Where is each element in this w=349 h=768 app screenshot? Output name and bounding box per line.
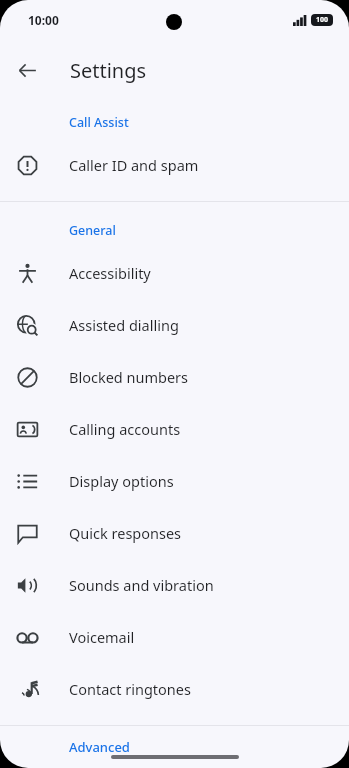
button[interactable]: Sounds and vibration: [0, 559, 349, 611]
staticText: Settings: [70, 57, 147, 84]
staticText: Advanced: [69, 738, 130, 756]
button[interactable]: Advanced: [0, 726, 349, 768]
button[interactable]: Contact ringtones: [0, 663, 349, 715]
staticText: Calling accounts: [69, 419, 181, 439]
staticText: Display options: [69, 471, 174, 491]
button[interactable]: Calling accounts: [0, 403, 349, 455]
staticText: 10:00: [28, 12, 59, 28]
button[interactable]: Accessibility: [0, 247, 349, 299]
staticText: Blocked numbers: [69, 367, 189, 387]
staticText: Quick responses: [69, 523, 182, 543]
button[interactable]: Quick responses: [0, 507, 349, 559]
button[interactable]: Back: [11, 54, 43, 86]
staticText: Assisted dialling: [69, 315, 179, 335]
button[interactable]: Assisted dialling: [0, 299, 349, 351]
staticText: Caller ID and spam: [69, 155, 199, 175]
button[interactable]: Display options: [0, 455, 349, 507]
staticText: Call Assist: [69, 114, 129, 131]
staticText: 100: [316, 15, 329, 25]
staticText: Accessibility: [69, 263, 151, 283]
staticText: Sounds and vibration: [69, 575, 214, 595]
staticText: General: [69, 222, 116, 239]
button[interactable]: Caller ID and spam: [0, 139, 349, 191]
button[interactable]: Blocked numbers: [0, 351, 349, 403]
staticText: Voicemail: [69, 627, 135, 647]
button[interactable]: Voicemail: [0, 611, 349, 663]
staticText: Contact ringtones: [69, 679, 191, 699]
